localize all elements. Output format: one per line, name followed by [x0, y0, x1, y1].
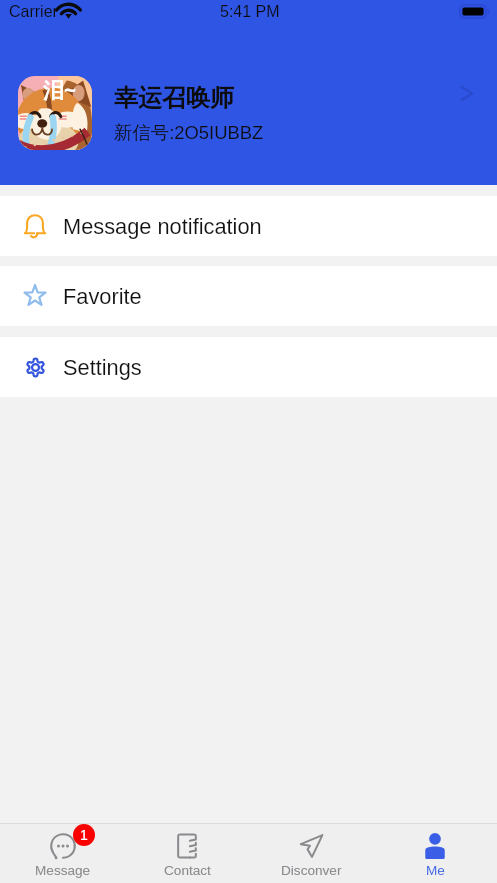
button[interactable]: Profile details [455, 81, 479, 105]
staticText: Carrier [9, 3, 58, 21]
staticText: 泪~ [43, 76, 77, 105]
staticText: Settings [63, 355, 142, 379]
staticText: 5:41 PM [220, 3, 280, 21]
staticText: Disconver [281, 863, 342, 878]
staticText: 1 [80, 827, 88, 843]
staticText: Message [35, 863, 91, 878]
button[interactable]: Me [373, 824, 497, 883]
button[interactable]: Disconver [249, 824, 373, 883]
staticText: Message notification [63, 214, 262, 238]
staticText: 幸运召唤师 [114, 83, 234, 113]
button[interactable]: Favorite [0, 266, 497, 326]
button[interactable]: Message notification [0, 196, 497, 256]
staticText: 新信号:2O5IUBBZ [114, 121, 264, 144]
button[interactable]: Settings [0, 337, 497, 397]
staticText: Contact [164, 863, 211, 878]
button[interactable]: Contact [125, 824, 249, 883]
button[interactable]: 1 [0, 824, 125, 883]
staticText: Favorite [63, 284, 142, 308]
staticText: Me [426, 863, 445, 878]
